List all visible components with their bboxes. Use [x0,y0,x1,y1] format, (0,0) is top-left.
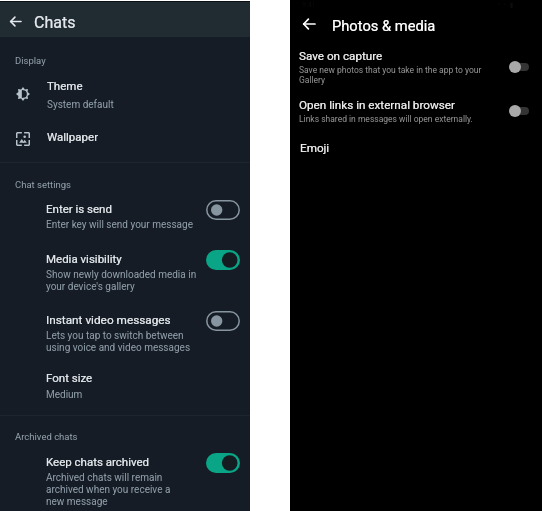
staticText: Save on capture [299,49,383,63]
button[interactable]: Save on capture [290,49,542,85]
button[interactable]: Toggle off [206,311,240,331]
button[interactable]: Theme [0,74,250,112]
staticText: Links shared in messages will open exter… [299,114,473,124]
staticText: Media visibility [46,252,122,265]
staticText: Medium [46,389,83,401]
button[interactable]: Emoji [290,141,542,163]
button[interactable]: Toggle off [509,105,529,117]
staticText: Archived chats will remain [46,472,163,484]
staticText: System default [47,99,114,111]
button[interactable]: Wallpaper [0,124,250,152]
staticText: Lets you tap to switch between [46,330,184,342]
staticText: Theme [47,79,83,92]
button[interactable]: Enter is send [0,202,250,228]
staticText: archived when you receive a [46,484,171,496]
button[interactable]: Toggle off [509,61,529,73]
staticText: Font size [46,371,93,384]
staticText: Chats [34,13,76,32]
staticText: Show newly downloaded media in [46,269,197,281]
staticText: Instant video messages [46,313,171,327]
staticText: Enter key will send your message [46,219,193,231]
button[interactable]: Open links in external browser [290,98,542,123]
staticText: Enter is send [46,202,112,215]
staticText: Save new photos that you take in the app… [299,65,482,75]
staticText: Chat settings [15,179,71,190]
button[interactable]: Toggle off [206,200,240,220]
button[interactable]: Keep chats archived [0,455,250,505]
button[interactable]: Back [2,8,28,34]
staticText: Display [15,55,46,66]
staticText: • • ▮ [498,1,514,9]
staticText: your device's gallery [46,281,135,293]
button[interactable]: Toggle on [206,453,240,473]
staticText: using voice and video messages [46,342,191,354]
staticText: Open links in external browser [299,98,455,112]
staticText: Emoji [300,141,330,155]
button[interactable]: Media visibility [0,252,250,290]
staticText: Archived chats [15,431,78,442]
staticText: Photos & media [332,17,436,34]
staticText: new message [46,496,108,508]
button[interactable]: Toggle on [206,250,240,270]
button[interactable]: Back [296,11,322,37]
button[interactable]: Font size [0,368,250,404]
button[interactable]: Instant video messages [0,313,250,351]
staticText: Gallery [299,75,326,85]
staticText: Keep chats archived [46,455,150,468]
staticText: Wallpaper [47,130,99,143]
